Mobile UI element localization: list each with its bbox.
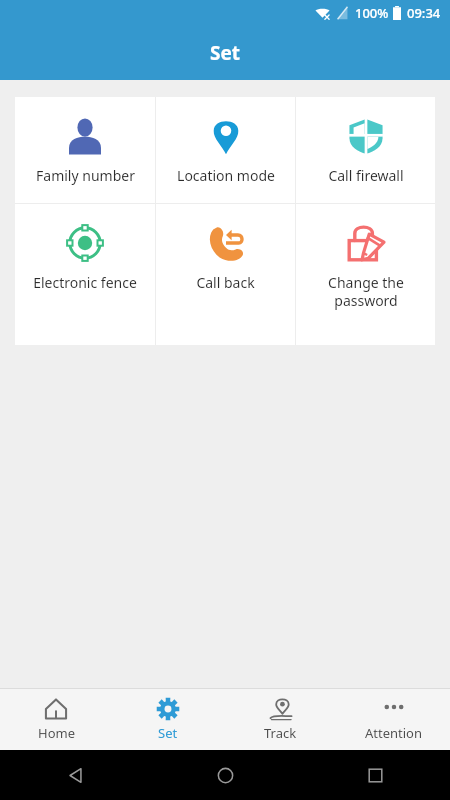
button[interactable]: Home bbox=[150, 750, 300, 800]
staticText: Electronic fence bbox=[33, 273, 137, 292]
button[interactable]: Location mode bbox=[156, 97, 295, 203]
staticText: Home bbox=[38, 724, 75, 742]
button[interactable]: Family number bbox=[15, 97, 155, 203]
button[interactable]: Attention bbox=[337, 689, 450, 750]
button[interactable]: Back bbox=[0, 750, 150, 800]
staticText: Family number bbox=[36, 166, 135, 185]
button[interactable]: Call firewall bbox=[296, 97, 435, 203]
button[interactable]: Set bbox=[112, 689, 224, 750]
staticText: Set bbox=[210, 40, 241, 66]
staticText: Call back bbox=[196, 273, 255, 292]
staticText: 09:34 bbox=[407, 4, 441, 22]
button[interactable]: Home bbox=[0, 689, 112, 750]
button[interactable]: Change the password bbox=[296, 204, 435, 345]
staticText: Change the password bbox=[328, 273, 404, 310]
button[interactable]: Electronic fence bbox=[15, 204, 155, 345]
staticText: Track bbox=[264, 724, 297, 742]
button[interactable]: Track bbox=[224, 689, 337, 750]
button[interactable]: Recent apps bbox=[300, 750, 450, 800]
staticText: Location mode bbox=[177, 166, 275, 185]
staticText: 100% bbox=[355, 4, 389, 22]
staticText: Call firewall bbox=[328, 166, 404, 185]
button[interactable]: Call back bbox=[156, 204, 295, 345]
staticText: Set bbox=[158, 724, 178, 742]
staticText: Attention bbox=[365, 724, 423, 742]
